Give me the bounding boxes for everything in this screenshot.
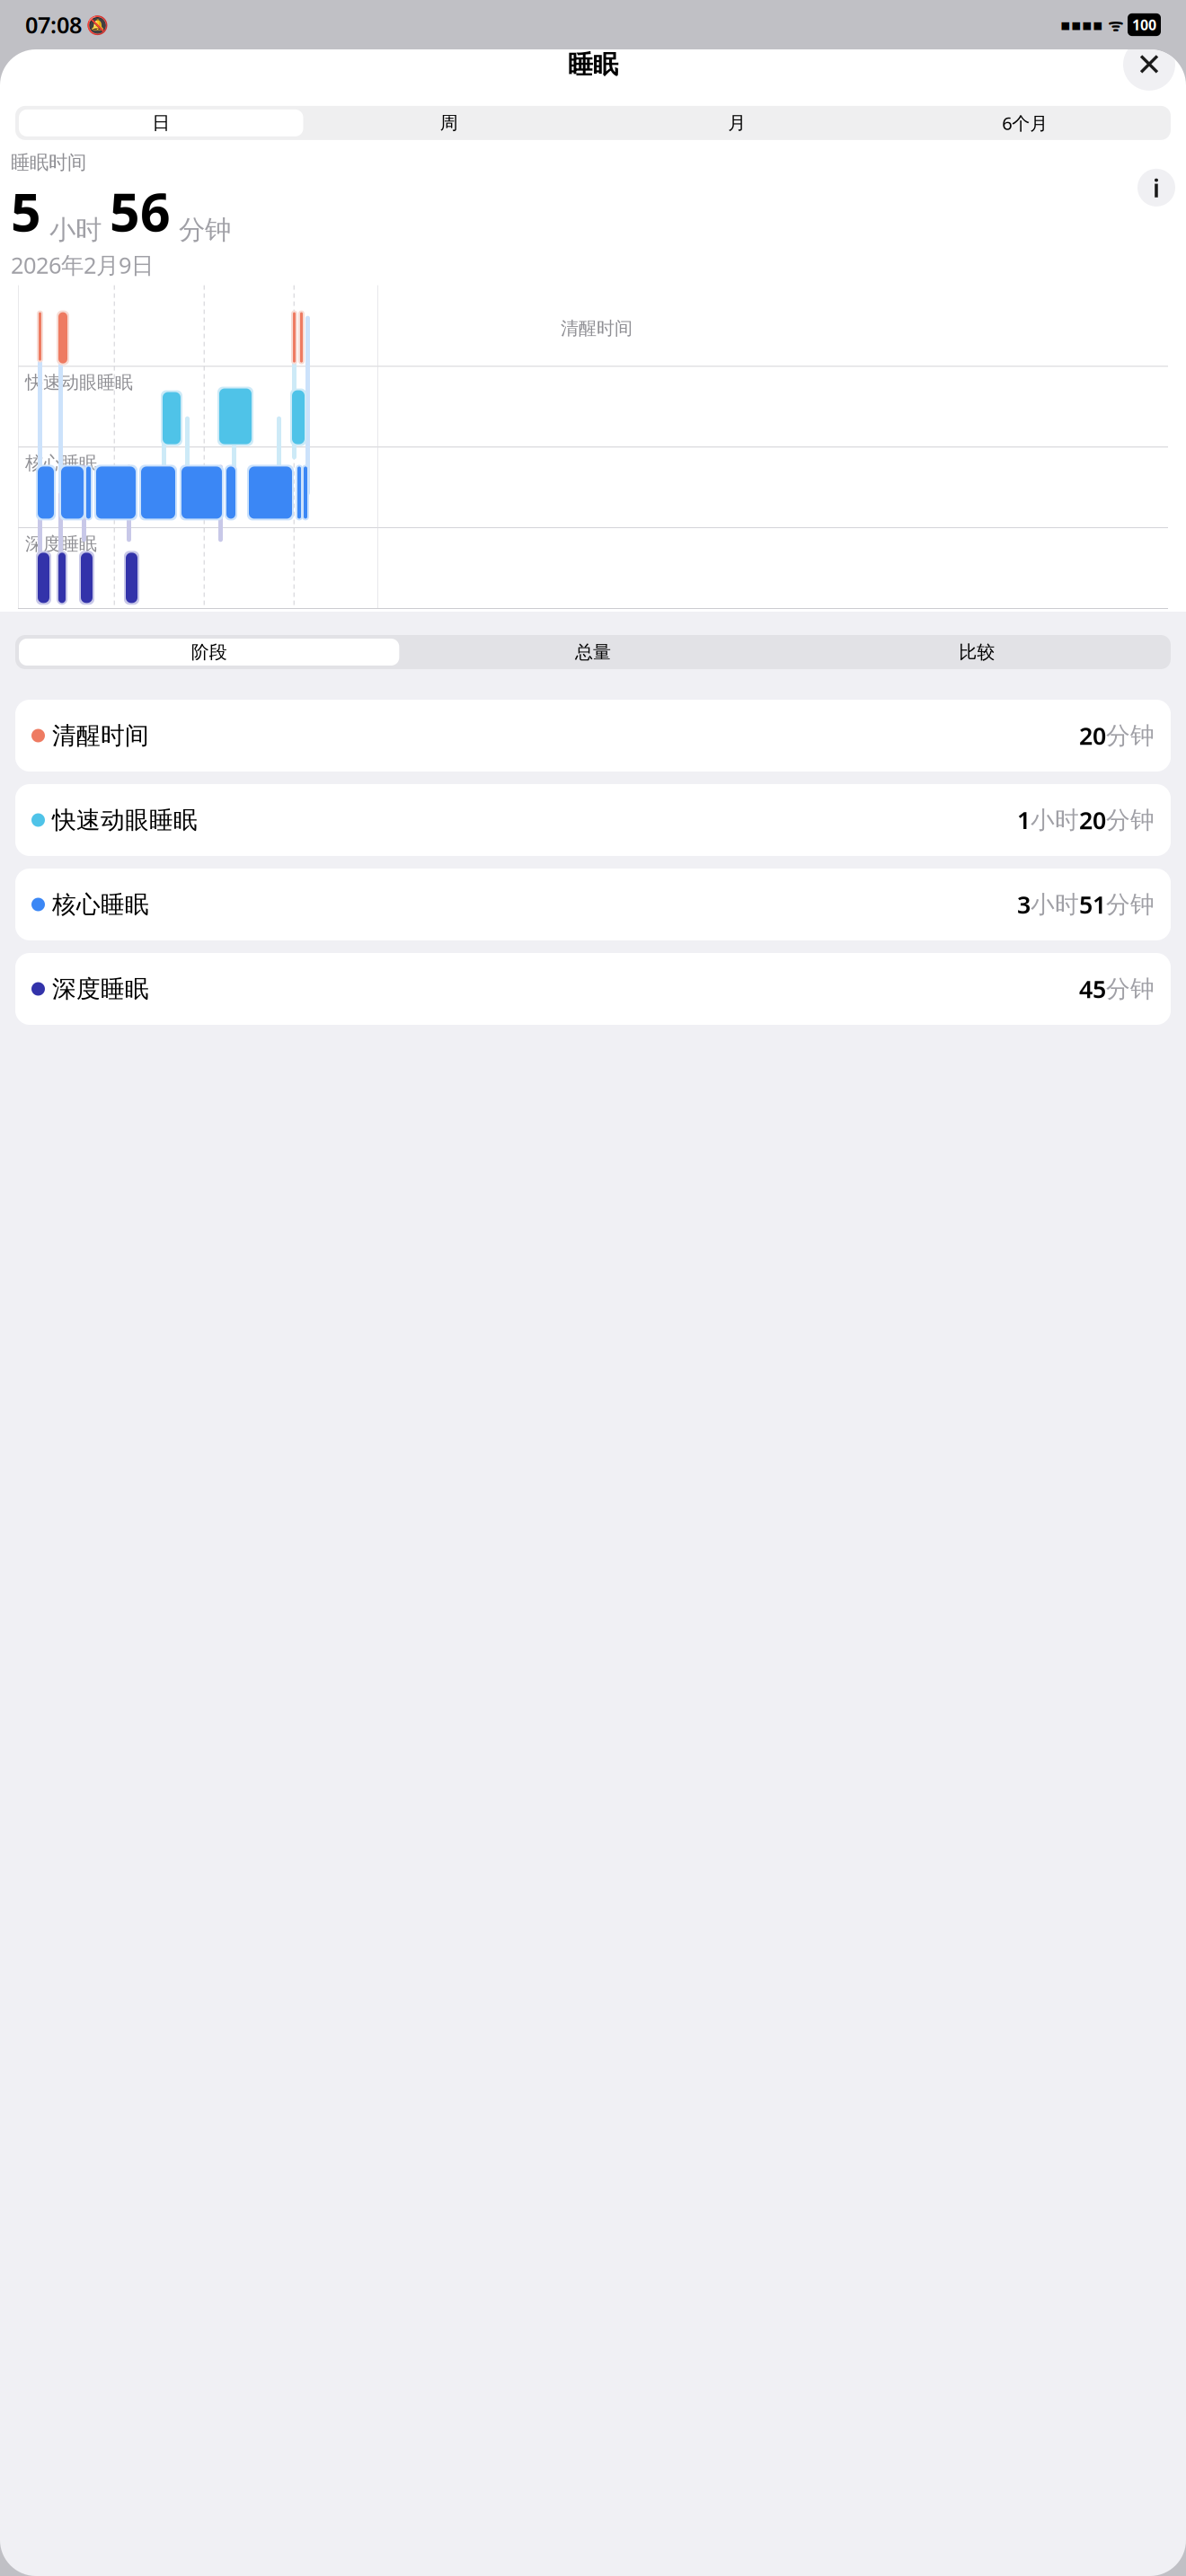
staticText: 阶段: [191, 641, 227, 663]
button[interactable]: 比较: [785, 637, 1169, 667]
staticText: 06:00: [281, 611, 333, 638]
staticText: 核心睡眠: [25, 452, 97, 474]
staticText: 小时: [1031, 890, 1079, 919]
button[interactable]: 6个月: [881, 108, 1169, 138]
staticText: 核心睡眠: [52, 890, 149, 919]
staticText: 小时: [41, 214, 110, 246]
staticText: 深度睡眠: [52, 974, 149, 1004]
staticText: 比较: [959, 641, 995, 663]
staticText: 清醒时间: [561, 317, 633, 339]
staticText: 2026年2月9日: [11, 250, 154, 280]
button[interactable]: 更多信息: [1137, 169, 1175, 206]
staticText: 45: [1079, 973, 1106, 1005]
staticText: 分钟: [171, 214, 231, 246]
staticText: 56: [110, 176, 171, 246]
button[interactable]: 周: [305, 108, 593, 138]
staticText: 睡眠时间: [11, 151, 86, 174]
staticText: 周: [440, 112, 458, 134]
staticText: 5: [11, 176, 41, 246]
button[interactable]: 深度睡眠: [15, 953, 1171, 1025]
button[interactable]: 月: [593, 108, 881, 138]
staticText: 分钟: [1106, 890, 1155, 919]
staticText: 总量: [575, 641, 611, 663]
button[interactable]: 关闭: [1123, 39, 1175, 91]
staticText: 月: [728, 112, 746, 134]
staticText: 日: [152, 112, 170, 134]
staticText: 分钟: [1106, 805, 1155, 835]
staticText: 小时: [1031, 805, 1079, 835]
staticText: ℹ: [1153, 171, 1160, 204]
button[interactable]: 阶段: [17, 637, 401, 667]
staticText: 07:08: [25, 10, 82, 40]
button[interactable]: 快速动眼睡眠: [15, 784, 1171, 856]
staticText: 04:00: [191, 611, 243, 638]
staticText: 快速动眼睡眠: [52, 805, 198, 835]
button[interactable]: 清醒时间: [15, 700, 1171, 772]
staticText: 分钟: [1106, 721, 1155, 750]
staticText: 20: [1079, 804, 1106, 836]
staticText: 🔕: [82, 13, 109, 37]
staticText: 3: [1017, 889, 1031, 920]
staticText: 睡眠: [568, 49, 618, 80]
staticText: 深度睡眠: [25, 533, 97, 555]
button[interactable]: 核心睡眠: [15, 869, 1171, 940]
staticText: 6个月: [1002, 111, 1048, 135]
staticText: 51: [1079, 889, 1106, 920]
staticText: ▪▪▪▪: [1060, 16, 1103, 34]
staticText: 分钟: [1106, 974, 1155, 1004]
staticText: 快速动眼睡眠: [25, 371, 133, 393]
button[interactable]: 日: [17, 108, 305, 138]
staticText: 清醒时间: [52, 721, 149, 750]
staticText: 00:00: [12, 611, 64, 638]
staticText: ᯤ: [1103, 14, 1128, 36]
staticText: 1: [1017, 804, 1031, 836]
staticText: ✕: [1136, 47, 1162, 82]
staticText: 100: [1132, 15, 1156, 34]
button[interactable]: 总量: [401, 637, 785, 667]
staticText: 20: [1079, 720, 1106, 752]
staticText: 02:00: [102, 611, 154, 638]
